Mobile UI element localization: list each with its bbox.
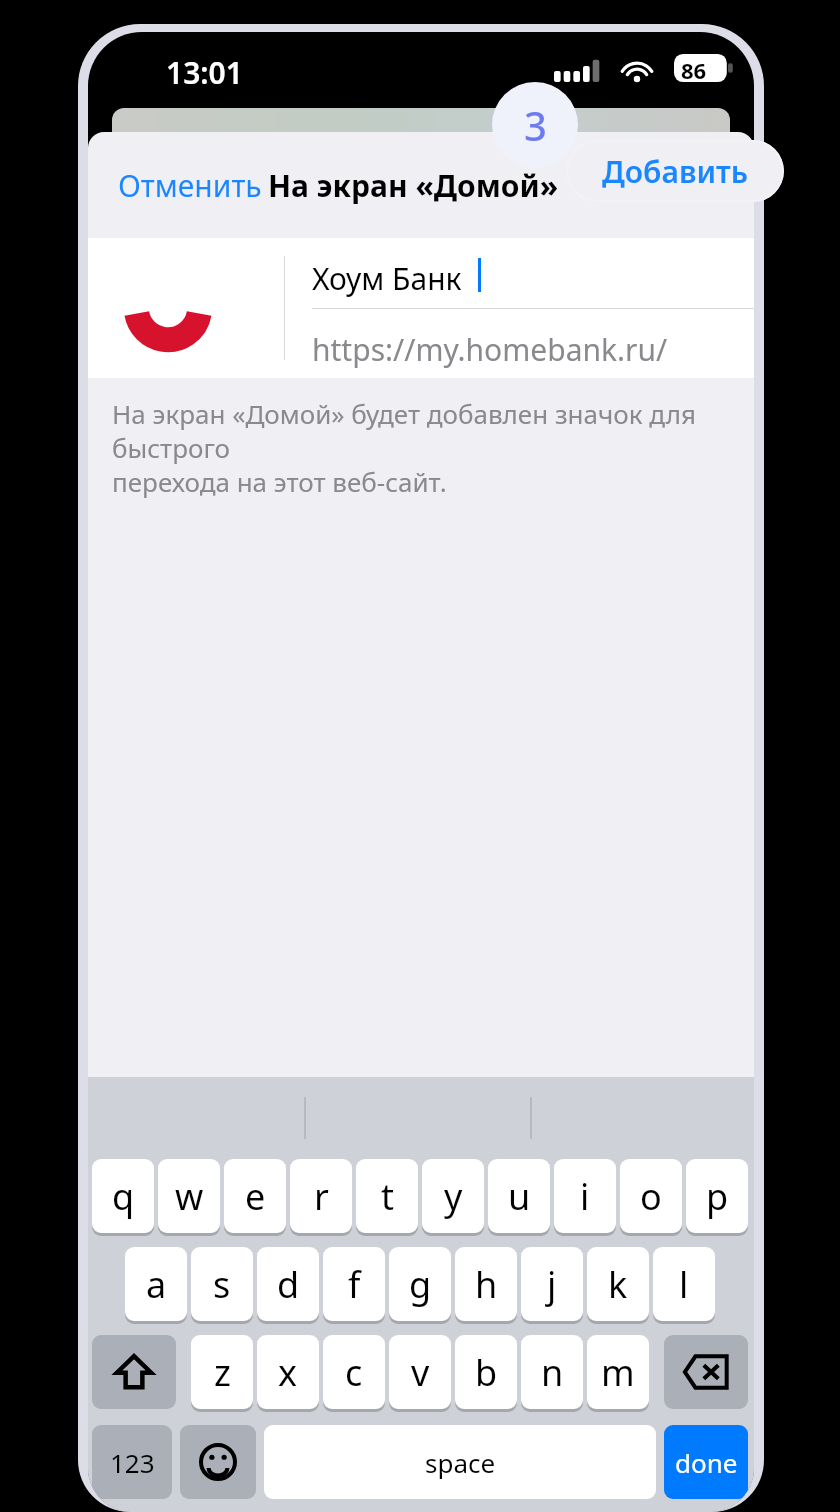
button[interactable]: h: [455, 1247, 517, 1321]
button[interactable]: j: [521, 1247, 583, 1321]
button[interactable]: Отменить: [100, 157, 280, 214]
staticText: На экран «Домой»: [268, 165, 559, 206]
staticText: 123: [110, 1445, 155, 1480]
button[interactable]: Numbers: [92, 1425, 172, 1499]
staticText: На экран «Домой» будет добавлен значок д…: [112, 396, 754, 499]
staticText: w: [175, 1172, 204, 1221]
button[interactable]: Хоум Банк: [88, 238, 754, 308]
button[interactable]: Добавить: [566, 140, 784, 202]
staticText: z: [214, 1348, 231, 1397]
staticText: d: [277, 1260, 300, 1309]
staticText: q: [112, 1172, 135, 1221]
button[interactable]: x: [257, 1335, 319, 1409]
staticText: space: [425, 1445, 496, 1480]
button[interactable]: n: [521, 1335, 583, 1409]
button[interactable]: c: [323, 1335, 385, 1409]
staticText: Добавить: [602, 151, 748, 192]
button[interactable]: Shift: [92, 1335, 176, 1409]
button[interactable]: o: [620, 1159, 682, 1233]
button[interactable]: y: [422, 1159, 484, 1233]
button[interactable]: w: [158, 1159, 220, 1233]
staticText: c: [345, 1348, 363, 1397]
button[interactable]: z: [191, 1335, 253, 1409]
staticText: v: [411, 1348, 430, 1397]
button[interactable]: e: [224, 1159, 286, 1233]
staticText: n: [541, 1348, 564, 1397]
button[interactable]: s: [191, 1247, 253, 1321]
button[interactable]: https://my.homebank.ru/: [88, 309, 754, 378]
staticText: i: [580, 1172, 590, 1221]
staticText: 13:01: [166, 52, 243, 93]
button[interactable]: q: [92, 1159, 154, 1233]
staticText: u: [508, 1172, 531, 1221]
staticText: Хоум Банк: [312, 258, 462, 299]
staticText: h: [475, 1260, 498, 1309]
staticText: 86: [681, 55, 707, 85]
button[interactable]: f: [323, 1247, 385, 1321]
button[interactable]: b: [455, 1335, 517, 1409]
button[interactable]: a: [125, 1247, 187, 1321]
button[interactable]: l: [653, 1247, 715, 1321]
staticText: l: [679, 1260, 689, 1309]
staticText: k: [608, 1260, 628, 1309]
staticText: s: [213, 1260, 231, 1309]
staticText: f: [348, 1260, 361, 1309]
staticText: a: [146, 1260, 167, 1309]
button[interactable]: Backspace: [664, 1335, 748, 1409]
button[interactable]: k: [587, 1247, 649, 1321]
button[interactable]: d: [257, 1247, 319, 1321]
staticText: r: [314, 1172, 329, 1221]
staticText: 3: [524, 98, 547, 152]
button[interactable]: g: [389, 1247, 451, 1321]
staticText: Отменить: [118, 165, 262, 206]
button[interactable]: m: [587, 1335, 649, 1409]
staticText: b: [475, 1348, 498, 1397]
button[interactable]: done: [664, 1425, 748, 1499]
staticText: x: [278, 1348, 298, 1397]
button[interactable]: u: [488, 1159, 550, 1233]
staticText: j: [547, 1260, 557, 1309]
staticText: y: [444, 1172, 463, 1221]
staticText: g: [409, 1260, 432, 1309]
button[interactable]: r: [290, 1159, 352, 1233]
staticText: e: [245, 1172, 266, 1221]
staticText: m: [601, 1348, 635, 1397]
staticText: done: [675, 1445, 738, 1480]
button[interactable]: v: [389, 1335, 451, 1409]
button[interactable]: p: [686, 1159, 748, 1233]
staticText: o: [640, 1172, 662, 1221]
staticText: https://my.homebank.ru/: [312, 329, 668, 370]
button[interactable]: space: [264, 1425, 656, 1499]
staticText: t: [381, 1172, 394, 1221]
button[interactable]: Emoji: [180, 1425, 256, 1499]
button[interactable]: i: [554, 1159, 616, 1233]
button[interactable]: t: [356, 1159, 418, 1233]
staticText: p: [706, 1172, 729, 1221]
